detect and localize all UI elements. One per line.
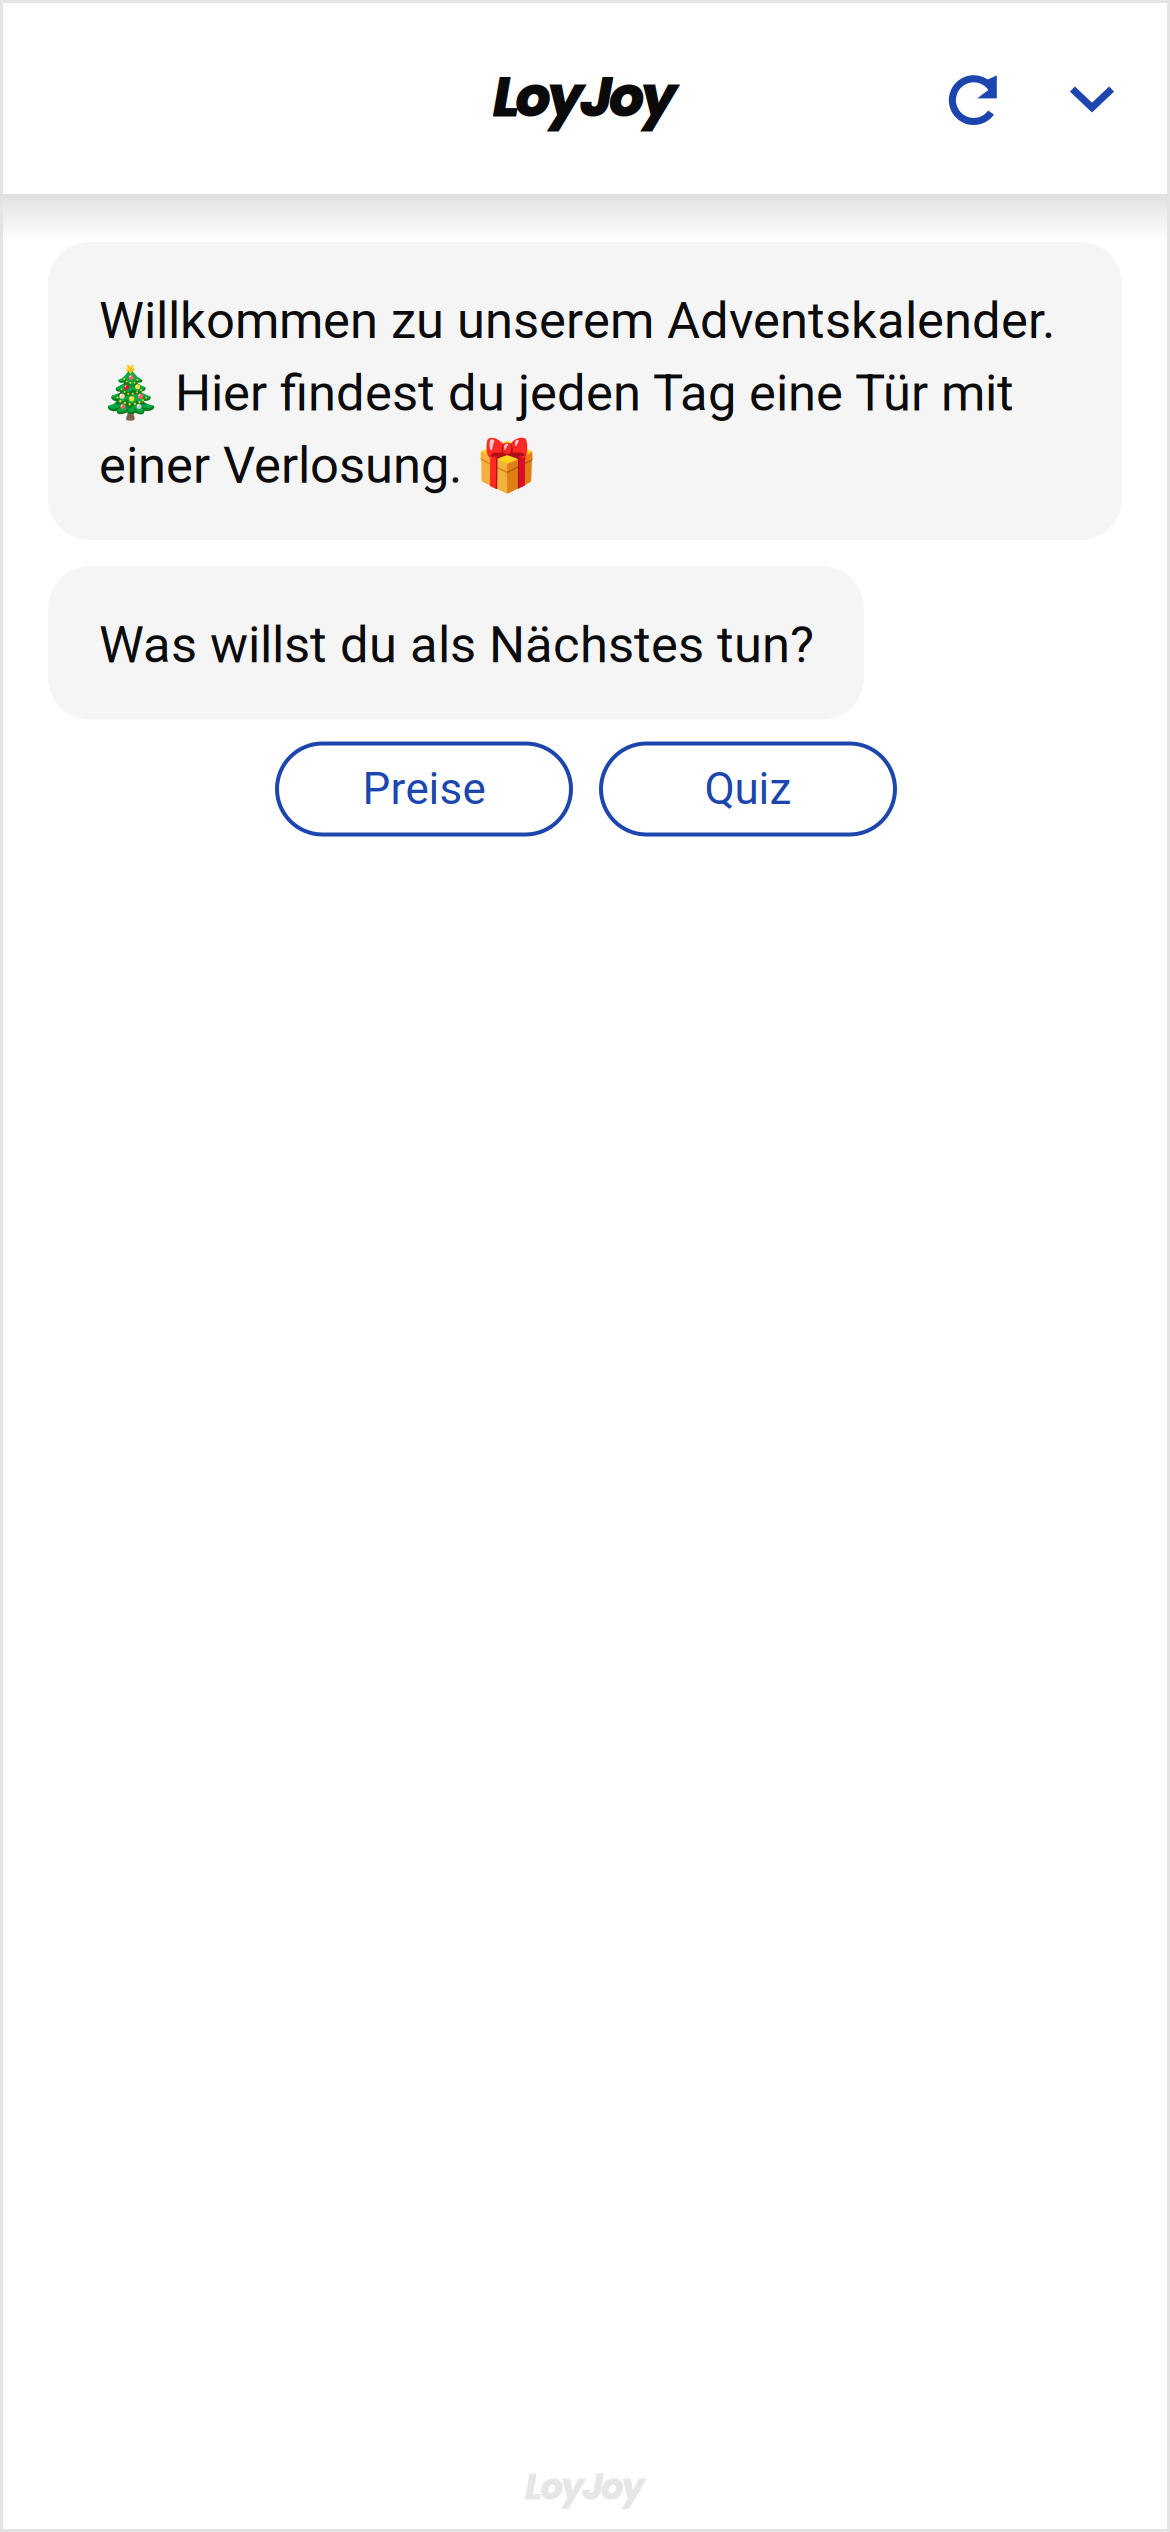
staticText: LoyJoy — [492, 58, 677, 136]
button[interactable]: Reload conversation — [932, 51, 1024, 143]
button[interactable]: Quiz — [601, 743, 895, 834]
staticText: Preise — [362, 763, 485, 815]
button[interactable]: Collapse chat — [1046, 51, 1138, 143]
staticText: Was willst du als Nächstes tun? — [99, 615, 814, 674]
staticText: Quiz — [704, 763, 791, 815]
staticText: LoyJoy — [525, 2462, 645, 2512]
button[interactable]: Preise — [277, 743, 571, 834]
staticText: Willkommen zu unserem Adventskalender. 🎄… — [99, 291, 1055, 495]
